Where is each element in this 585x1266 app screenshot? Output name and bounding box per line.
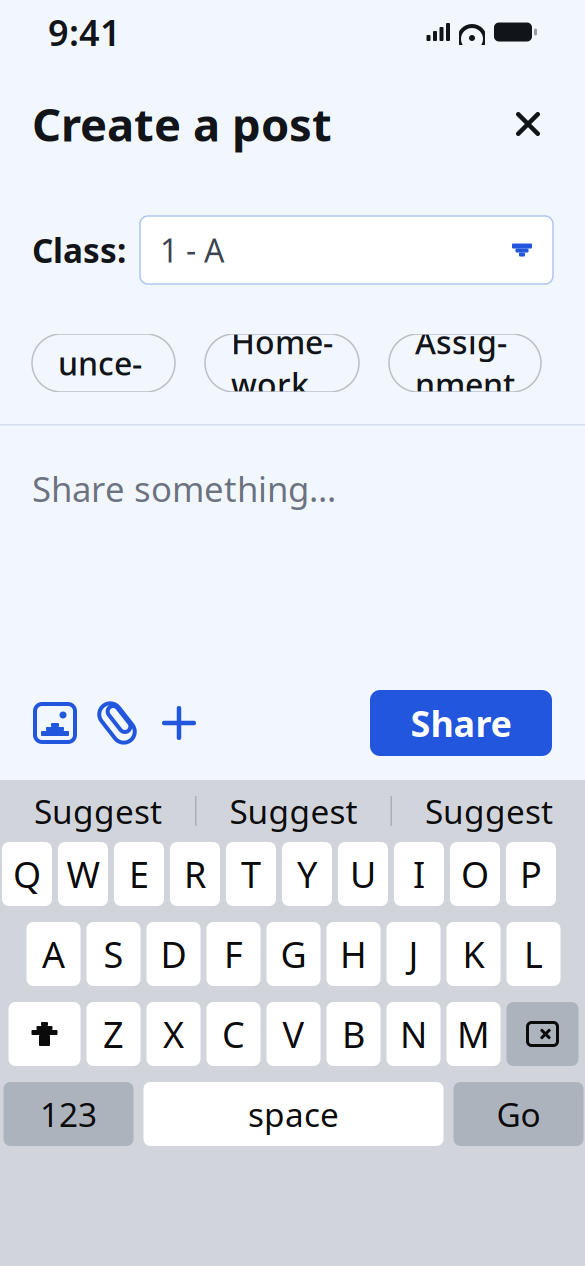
button[interactable]: H xyxy=(326,922,380,986)
staticText: V xyxy=(282,1010,304,1058)
button[interactable]: Z xyxy=(86,1002,140,1066)
staticText: A xyxy=(42,930,65,978)
button[interactable]: R xyxy=(170,842,220,906)
staticText: L xyxy=(524,930,543,978)
staticText: 9:41 xyxy=(48,8,121,56)
button[interactable]: E xyxy=(114,842,164,906)
button[interactable]: D xyxy=(146,922,200,986)
button[interactable]: X xyxy=(146,1002,200,1066)
staticText: Assignment xyxy=(415,320,515,405)
button[interactable]: M xyxy=(446,1002,500,1066)
staticText: space xyxy=(248,1092,339,1136)
button[interactable]: Go xyxy=(453,1082,583,1146)
staticText: B xyxy=(342,1010,365,1058)
staticText: Class: xyxy=(32,228,126,272)
button[interactable]: Announcement xyxy=(32,334,175,392)
button[interactable]: Y xyxy=(282,842,332,906)
button[interactable]: O xyxy=(450,842,500,906)
button[interactable]: Shift xyxy=(8,1002,80,1066)
button[interactable]: space xyxy=(143,1082,443,1146)
staticText: G xyxy=(280,930,306,978)
button[interactable]: Delete xyxy=(506,1002,578,1066)
button[interactable]: W xyxy=(58,842,108,906)
button[interactable]: S xyxy=(86,922,140,986)
button[interactable]: Suggest xyxy=(196,780,390,842)
button[interactable]: Attach file xyxy=(86,692,148,754)
button[interactable]: T xyxy=(226,842,276,906)
staticText: Create a post xyxy=(32,94,332,154)
staticText: P xyxy=(520,850,542,898)
staticText: Share something... xyxy=(32,465,336,511)
staticText: N xyxy=(400,1010,427,1058)
button[interactable]: Homework xyxy=(205,334,359,392)
staticText: Suggest xyxy=(229,789,357,833)
button[interactable]: I xyxy=(394,842,444,906)
staticText: K xyxy=(462,930,484,978)
staticText: M xyxy=(457,1010,490,1058)
button[interactable]: K xyxy=(446,922,500,986)
staticText: Announcement xyxy=(58,299,149,427)
staticText: J xyxy=(408,930,418,978)
button[interactable]: Assignment xyxy=(389,334,541,392)
button[interactable]: C xyxy=(206,1002,260,1066)
button[interactable]: P xyxy=(506,842,556,906)
button[interactable]: 1 - A xyxy=(140,216,553,284)
button[interactable]: B xyxy=(326,1002,380,1066)
staticText: R xyxy=(184,850,206,898)
staticText: E xyxy=(129,850,149,898)
staticText: O xyxy=(461,850,489,898)
button[interactable]: Close xyxy=(503,99,553,149)
button[interactable]: U xyxy=(338,842,388,906)
button[interactable]: G xyxy=(266,922,320,986)
staticText: Q xyxy=(13,850,41,898)
staticText: Share xyxy=(410,699,511,747)
button[interactable]: Add photo xyxy=(24,692,86,754)
staticText: 123 xyxy=(40,1092,97,1136)
staticText: U xyxy=(350,850,376,898)
staticText: Suggest xyxy=(34,789,162,833)
button[interactable]: L xyxy=(506,922,560,986)
staticText: Go xyxy=(496,1092,540,1136)
staticText: T xyxy=(241,850,261,898)
staticText: Homework xyxy=(231,320,333,405)
staticText: D xyxy=(160,930,186,978)
staticText: S xyxy=(103,930,123,978)
staticText: X xyxy=(163,1010,184,1058)
button[interactable]: A xyxy=(26,922,80,986)
button[interactable]: More options xyxy=(148,692,210,754)
staticText: C xyxy=(222,1010,245,1058)
button[interactable]: Q xyxy=(2,842,52,906)
staticText: Y xyxy=(297,850,317,898)
button[interactable]: N xyxy=(386,1002,440,1066)
staticText: Z xyxy=(103,1010,124,1058)
button[interactable]: 123 xyxy=(3,1082,133,1146)
staticText: Suggest xyxy=(425,789,553,833)
staticText: I xyxy=(413,850,425,898)
button[interactable]: J xyxy=(386,922,440,986)
staticText: F xyxy=(224,930,243,978)
staticText: 1 - A xyxy=(160,229,224,271)
button[interactable]: V xyxy=(266,1002,320,1066)
staticText: W xyxy=(66,850,99,898)
staticText: H xyxy=(340,930,367,978)
button[interactable]: F xyxy=(206,922,260,986)
button[interactable]: Suggest xyxy=(1,780,195,842)
button[interactable]: Share xyxy=(370,690,552,756)
button[interactable]: Suggest xyxy=(392,780,585,842)
